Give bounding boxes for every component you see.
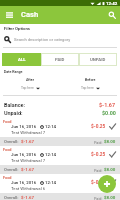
staticText: 12:42 [106, 1, 118, 6]
staticText: Paid: [94, 168, 103, 172]
staticText: Filter Options [4, 26, 31, 31]
staticText: 12:14 [45, 124, 57, 129]
staticText: Test Withdrawal 7 [11, 158, 46, 163]
staticText: 12:14 [45, 180, 57, 185]
staticText: Paid: [94, 140, 103, 144]
staticText: $0.00 [102, 110, 116, 116]
staticText: Test Withdrawal 6 [11, 186, 46, 191]
staticText: UNPAID [90, 57, 106, 62]
button[interactable]: Tap here [21, 86, 40, 90]
button[interactable]: Search description or category [4, 35, 116, 44]
button[interactable]: Search [106, 9, 118, 21]
staticText: Jun 16, 2016 [11, 124, 37, 129]
staticText: Tap here [81, 86, 94, 90]
staticText: Tap here [21, 86, 34, 90]
staticText: $-1.67 [21, 167, 35, 172]
staticText: $8.00 [104, 167, 116, 172]
staticText: PAID [55, 57, 65, 62]
button[interactable]: UNPAID [79, 53, 117, 66]
staticText: $-0.25 [91, 180, 106, 186]
staticText: Food [3, 147, 12, 151]
button[interactable]: Food [0, 174, 120, 200]
button[interactable]: Food [0, 118, 120, 146]
staticText: Jun 16, 2016 [11, 180, 37, 185]
staticText: 12:14 [45, 152, 57, 157]
staticText: $-1.67 [21, 139, 35, 144]
staticText: $-0.25 [91, 152, 106, 158]
button[interactable]: Food [0, 146, 120, 174]
button[interactable]: ALL [2, 53, 41, 66]
staticText: $8.00 [104, 195, 116, 200]
staticText: Cash [21, 10, 39, 19]
staticText: Date Range [4, 70, 23, 74]
staticText: Paid: [94, 196, 103, 200]
staticText: Balance: [4, 102, 25, 108]
button[interactable]: Menu [3, 9, 15, 21]
staticText: ALL [18, 57, 26, 62]
staticText: $-1.67 [21, 195, 35, 200]
button[interactable]: Tap here [81, 86, 100, 90]
staticText: After [26, 78, 34, 82]
staticText: Search description or category [14, 37, 71, 42]
staticText: Overall: [4, 139, 19, 144]
staticText: Test Withdrawal 7 [11, 130, 46, 135]
staticText: Overall: [4, 167, 19, 172]
button[interactable]: PAID [41, 53, 79, 66]
staticText: Overall: [4, 195, 19, 200]
button[interactable]: Add transaction [98, 175, 116, 193]
staticText: Food [3, 175, 12, 179]
staticText: Unpaid: [4, 110, 23, 116]
staticText: Before [85, 78, 96, 82]
staticText: $8.00 [104, 139, 116, 144]
staticText: $-0.25 [91, 124, 106, 130]
staticText: $-1.67 [99, 102, 116, 108]
staticText: Food [3, 119, 12, 123]
staticText: Jun 16, 2016 [11, 152, 37, 157]
